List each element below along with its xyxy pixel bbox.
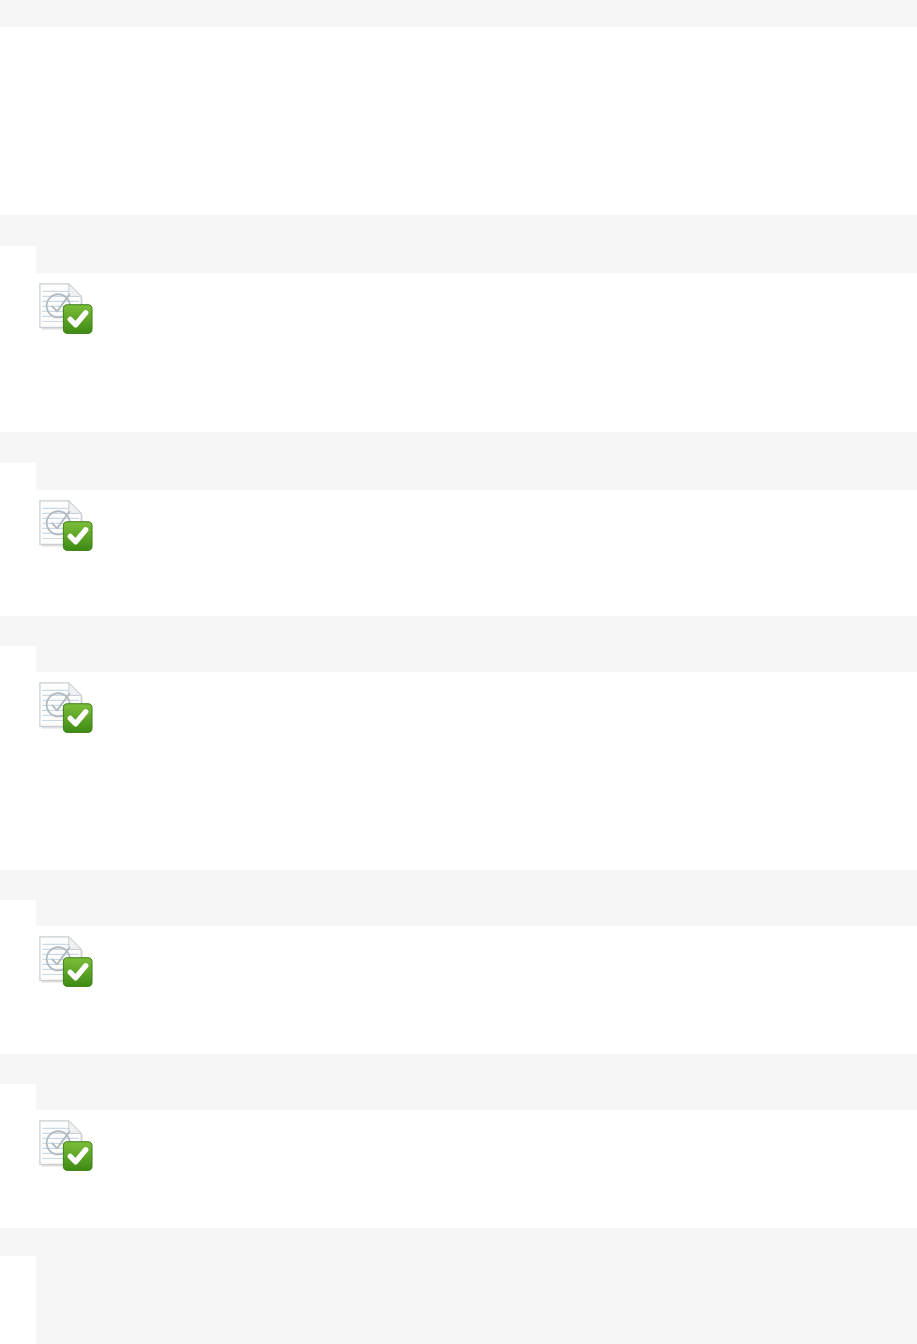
button[interactable]: Completed document: [0, 1054, 917, 1228]
button[interactable]: Completed document: [0, 432, 917, 616]
other: Completed document: [38, 680, 92, 734]
other: Completed document: [38, 498, 92, 552]
button[interactable]: Completed document: [0, 215, 917, 432]
other: Completed document: [38, 934, 92, 988]
button[interactable]: Completed document: [0, 870, 917, 1054]
other: Completed document: [38, 1118, 92, 1172]
button[interactable]: Completed document: [0, 616, 917, 870]
other: Completed document: [38, 281, 92, 335]
